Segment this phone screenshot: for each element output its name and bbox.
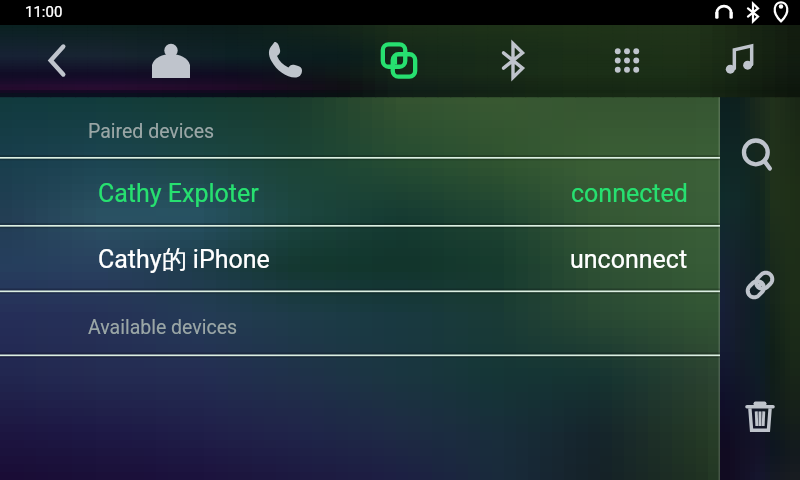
button[interactable]: Available devices <box>0 292 720 355</box>
button[interactable]: Apps <box>570 25 684 96</box>
button[interactable]: Delete <box>724 379 796 451</box>
button[interactable]: Bluetooth <box>456 25 570 96</box>
button[interactable]: Cathy的 iPhone <box>0 226 720 291</box>
staticText: 11:00 <box>25 3 63 21</box>
staticText: Paired devices <box>88 120 215 143</box>
staticText: Available devices <box>88 316 238 339</box>
staticText: Cathy的 iPhone <box>98 244 270 275</box>
button[interactable]: Pair device <box>342 25 456 96</box>
button[interactable]: Back <box>0 25 114 96</box>
staticText: Cathy Exploter <box>98 179 259 208</box>
button[interactable]: Dial pad <box>228 25 342 96</box>
staticText: unconnect <box>570 245 688 274</box>
button[interactable]: Music <box>684 25 798 96</box>
button[interactable]: Link <box>724 249 796 321</box>
staticText: connected <box>571 179 688 208</box>
button[interactable]: Paired devices <box>0 96 720 158</box>
button[interactable]: Search <box>722 120 794 192</box>
button[interactable]: Cathy Exploter <box>0 158 720 226</box>
button[interactable]: Contacts <box>114 25 228 96</box>
